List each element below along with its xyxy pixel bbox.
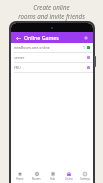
staticText: FRU: [14, 65, 21, 70]
staticText: Online: [65, 177, 74, 181]
staticText: Home: [16, 177, 24, 181]
button[interactable]: Home: [11, 169, 28, 183]
button[interactable]: newRoom.one.online: [11, 43, 93, 53]
button[interactable]: server: [11, 53, 93, 63]
staticText: Hub: [50, 177, 56, 181]
staticText: Online Games: [24, 34, 59, 41]
staticText: server: [14, 55, 25, 60]
staticText: newRoom.one.online: [14, 45, 50, 50]
button[interactable]: Rooms: [28, 169, 45, 183]
staticText: rooms and invite friends: [18, 12, 85, 20]
staticText: Create online: [33, 3, 70, 11]
button[interactable]: Online: [61, 169, 77, 183]
button[interactable]: FRU: [11, 63, 93, 73]
staticText: 1: [83, 45, 85, 50]
button[interactable]: Hub: [45, 169, 61, 183]
button[interactable]: Back: [14, 34, 22, 42]
staticText: Rooms: [32, 177, 41, 181]
button[interactable]: Settings: [77, 169, 93, 183]
staticText: Settings: [80, 177, 90, 181]
button[interactable]: Add room: [82, 34, 90, 42]
